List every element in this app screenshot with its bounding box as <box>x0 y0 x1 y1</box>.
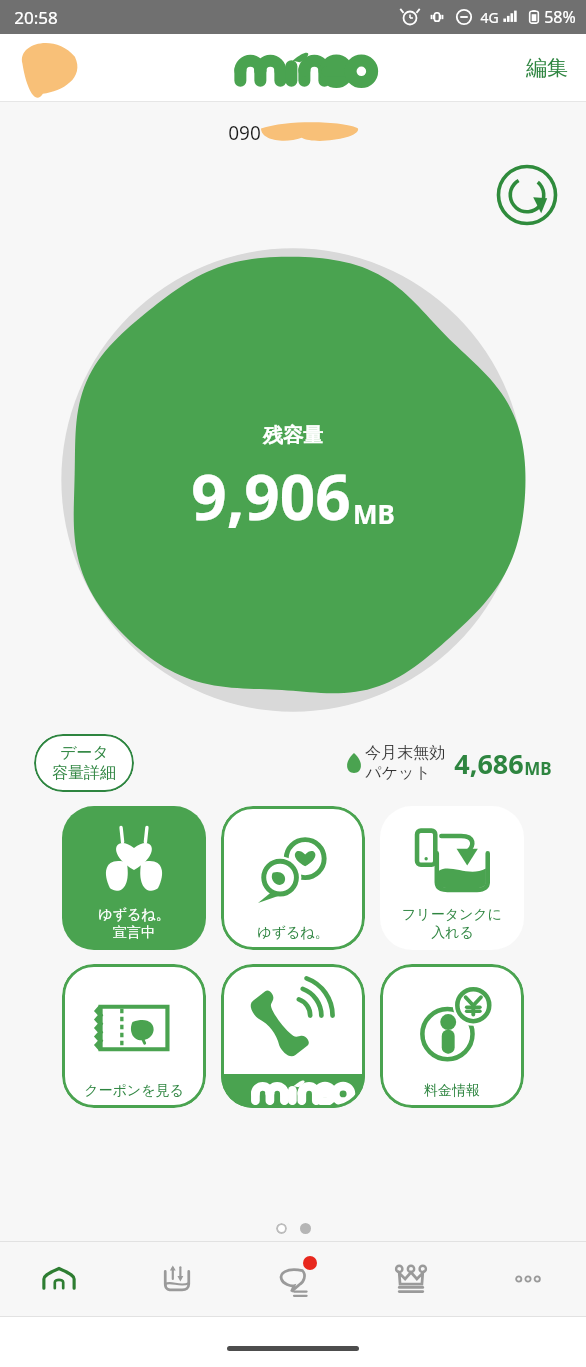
staticText: 料金情報 <box>424 1082 480 1100</box>
button[interactable]: フリータンクに入れる <box>380 806 524 950</box>
button[interactable]: Home <box>0 1242 118 1316</box>
button[interactable]: Data charge <box>118 1242 235 1316</box>
staticText: 20:58 <box>14 6 58 29</box>
button[interactable]: 料金情報 <box>380 964 524 1108</box>
staticText: フリータンクに <box>402 906 502 924</box>
staticText: MB <box>353 496 395 531</box>
button[interactable]: mineo でんわ <box>221 964 365 1108</box>
button[interactable]: More <box>469 1242 586 1316</box>
staticText: クーポンを見る <box>84 1082 184 1100</box>
button[interactable]: Rewards <box>352 1242 469 1316</box>
button[interactable]: ゆずるね。 <box>221 806 365 950</box>
button[interactable]: データ <box>34 734 134 792</box>
staticText: パケット <box>365 763 431 783</box>
staticText: 4G <box>480 8 499 27</box>
staticText: データ <box>60 743 109 763</box>
staticText: 090 <box>228 120 261 146</box>
staticText: 容量詳細 <box>52 763 116 783</box>
staticText: 今月末無効 <box>365 743 445 763</box>
button[interactable]: ゆずるね。宣言中 <box>62 806 206 950</box>
button[interactable]: Messages <box>235 1242 352 1316</box>
staticText: 4,686 <box>454 745 524 782</box>
staticText: 残容量 <box>263 423 323 448</box>
button[interactable]: 編集 <box>508 45 586 91</box>
button[interactable]: クーポンを見る <box>62 964 206 1108</box>
staticText: 編集 <box>526 55 568 81</box>
staticText: 宣言中 <box>113 924 155 942</box>
staticText: ゆずるね。 <box>98 906 170 924</box>
button[interactable]: Refresh <box>496 164 558 226</box>
staticText: 9,906 <box>191 454 351 538</box>
staticText: ゆずるね。 <box>257 924 329 942</box>
staticText: 入れる <box>431 924 474 942</box>
staticText: MB <box>524 757 552 780</box>
staticText: 58% <box>544 6 576 28</box>
